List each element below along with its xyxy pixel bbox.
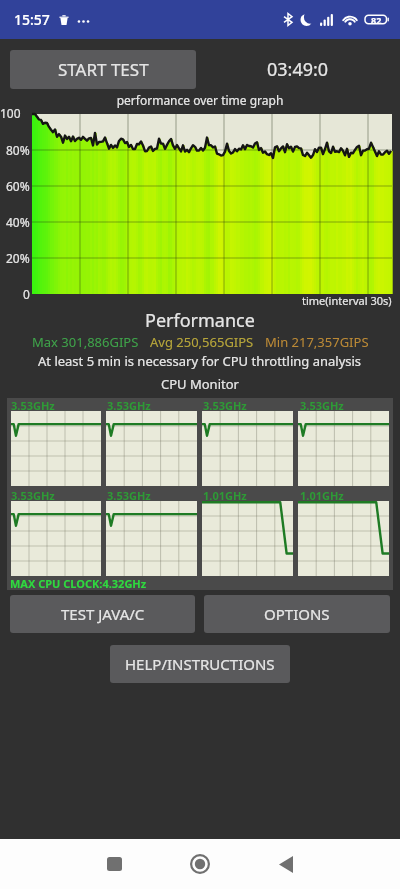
staticText: OPTIONS bbox=[264, 604, 330, 624]
button[interactable]: OPTIONS bbox=[204, 595, 390, 633]
staticText: 20% bbox=[6, 250, 30, 266]
staticText: 40% bbox=[6, 214, 30, 230]
staticText: 100% bbox=[0, 105, 30, 123]
staticText: 3.53GHz bbox=[107, 488, 151, 501]
staticText: HELP/INSTRUCTIONS bbox=[125, 654, 275, 674]
staticText: 3.53GHz bbox=[11, 398, 55, 411]
staticText: Min 217,357GIPS bbox=[265, 333, 369, 351]
staticText: TEST JAVA/C bbox=[61, 604, 145, 624]
staticText: START TEST bbox=[58, 58, 149, 81]
staticText: Performance bbox=[145, 308, 255, 333]
staticText: 1.01GHz bbox=[300, 488, 344, 501]
staticText: 80% bbox=[6, 142, 30, 158]
button[interactable]: Back bbox=[264, 842, 308, 886]
staticText: 82 bbox=[371, 14, 382, 26]
staticText: 3.53GHz bbox=[203, 398, 247, 411]
button[interactable]: Recent apps bbox=[92, 842, 136, 886]
staticText: Avg 250,565GIPS bbox=[150, 333, 254, 351]
button[interactable]: TEST JAVA/C bbox=[10, 595, 195, 633]
staticText: time(interval 30s) bbox=[302, 293, 392, 307]
staticText: 3.53GHz bbox=[107, 398, 151, 411]
staticText: performance over time graph bbox=[0, 92, 400, 108]
button[interactable]: START TEST bbox=[10, 50, 196, 89]
staticText: MAX CPU CLOCK:4.32GHz bbox=[10, 576, 147, 589]
staticText: 03:49:0 bbox=[267, 57, 329, 82]
button[interactable]: HELP/INSTRUCTIONS bbox=[110, 645, 290, 683]
staticText: 60% bbox=[6, 178, 30, 194]
staticText: Max 301,886GIPS bbox=[32, 333, 139, 351]
staticText: CPU Monitor bbox=[161, 375, 239, 393]
staticText: 3.53GHz bbox=[11, 488, 55, 501]
staticText: 0 bbox=[23, 286, 30, 302]
staticText: At least 5 min is necessary for CPU thro… bbox=[38, 352, 362, 370]
staticText: 1.01GHz bbox=[203, 488, 247, 501]
button[interactable]: Home bbox=[178, 842, 222, 886]
staticText: 15:57 bbox=[14, 10, 50, 29]
staticText: 3.53GHz bbox=[300, 398, 344, 411]
